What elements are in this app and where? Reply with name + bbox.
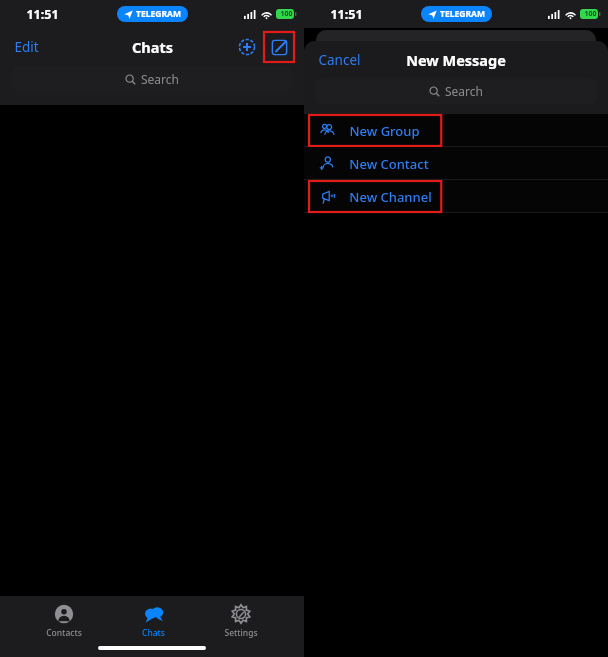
staticText: TELEGRAM [136,8,181,20]
staticText: TELEGRAM [440,8,485,20]
staticText: Contacts [46,627,82,639]
staticText: New Channel [349,188,432,206]
button[interactable]: Search [12,66,292,92]
button[interactable]: Chats [128,602,179,641]
button[interactable]: Edit [6,34,47,60]
staticText: Settings [224,627,258,639]
button[interactable]: New Channel [304,180,608,213]
staticText: Cancel [318,51,361,69]
button[interactable]: Compose message [264,32,294,62]
staticText: 100 [584,9,597,19]
staticText: Chats [132,37,173,57]
staticText: 100 [280,9,293,19]
staticText: 11:51 [26,6,59,23]
staticText: 11:51 [330,6,363,23]
button[interactable]: New chat [236,36,258,58]
staticText: Search [141,71,179,87]
staticText: New Message [406,50,506,70]
staticText: Chats [142,627,165,639]
button[interactable]: Cancel [310,47,369,73]
button[interactable]: Contacts [32,602,96,641]
staticText: New Group [349,122,420,140]
button[interactable]: New Group [304,114,608,147]
staticText: Search [445,83,483,99]
button[interactable]: New Contact [304,147,608,180]
button[interactable]: Settings [210,602,272,641]
staticText: Edit [14,38,39,56]
button[interactable]: Search [314,78,598,104]
staticText: New Contact [349,155,429,173]
